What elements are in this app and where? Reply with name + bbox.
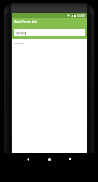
staticText: Short Forms List (14, 20, 37, 24)
button[interactable]: Recents (65, 154, 75, 164)
staticText: 12:00 (77, 14, 85, 18)
button[interactable]: Back (23, 154, 33, 164)
staticText: google (16, 31, 25, 35)
staticText: GOOGLE (14, 41, 24, 44)
button[interactable]: Home (44, 154, 54, 164)
button[interactable]: GOOGLE (12, 39, 87, 46)
button[interactable]: google (14, 29, 85, 36)
